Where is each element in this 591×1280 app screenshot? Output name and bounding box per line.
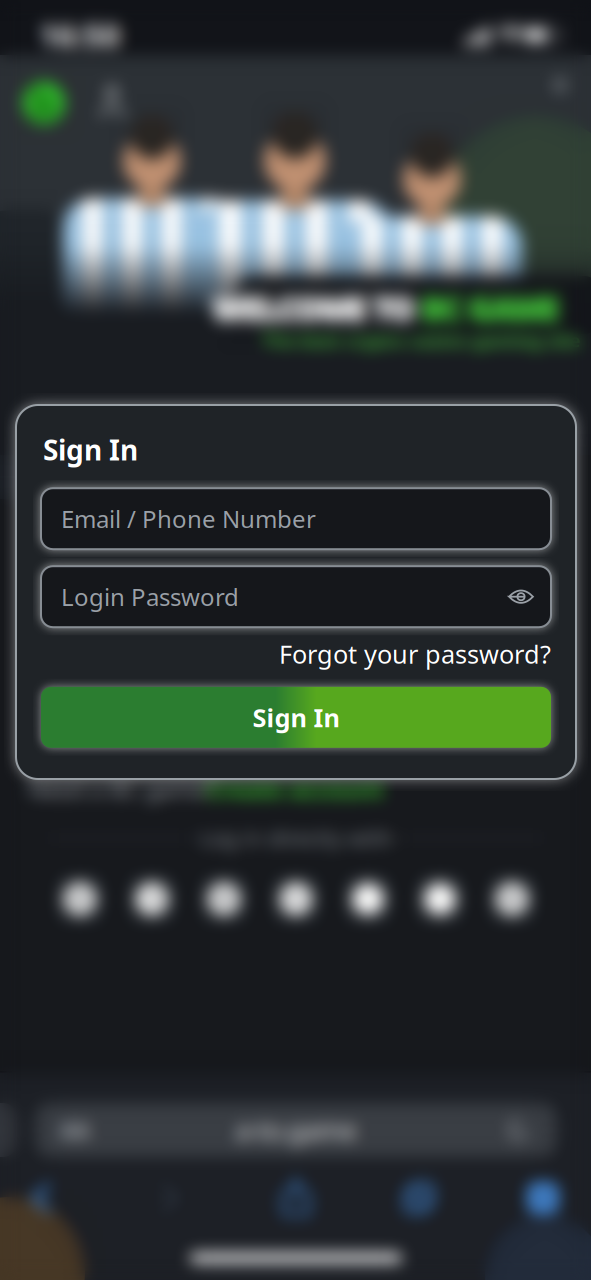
staticText: Log in directly with bbox=[200, 824, 392, 852]
button[interactable]: Show password bbox=[499, 580, 543, 613]
button[interactable]: Address bar: a-to.game bbox=[35, 1103, 557, 1157]
button[interactable]: Log in with provider 7 bbox=[486, 873, 538, 925]
staticText: Sign In bbox=[252, 700, 339, 734]
staticText: b bbox=[31, 76, 57, 129]
button[interactable]: Account bbox=[93, 81, 131, 123]
staticText: Forgot your password? bbox=[279, 637, 551, 671]
staticText: AA bbox=[60, 1115, 90, 1145]
button[interactable]: Create account bbox=[204, 771, 386, 807]
staticText: Create account bbox=[206, 773, 384, 805]
button[interactable]: Share bbox=[273, 1172, 319, 1224]
staticText: BC GAME bbox=[421, 287, 560, 329]
button[interactable]: BC Game home bbox=[23, 76, 65, 129]
button[interactable]: Tabs bbox=[395, 1172, 445, 1224]
staticText: Email / Phone Number bbox=[61, 503, 316, 535]
button[interactable]: Forgot your password? bbox=[279, 627, 551, 671]
button[interactable]: Log in with provider 4 bbox=[270, 873, 322, 925]
button[interactable]: Downloads bbox=[520, 1175, 566, 1221]
button[interactable]: Log in with provider 6 bbox=[414, 873, 466, 925]
staticText: 16:50 bbox=[39, 15, 120, 55]
button[interactable]: Sign In bbox=[41, 687, 551, 748]
button[interactable]: Log in with provider 1 bbox=[54, 873, 106, 925]
staticText: a-to.game bbox=[235, 1113, 356, 1147]
staticText: Sign In bbox=[43, 431, 138, 468]
staticText: WELCOME TO bbox=[212, 287, 415, 329]
staticText: Need a BC game? bbox=[28, 774, 216, 804]
button[interactable]: Log in with provider 5 bbox=[342, 873, 394, 925]
staticText: The best crypto casino gaming site bbox=[261, 328, 580, 352]
button[interactable]: Close bbox=[544, 69, 575, 100]
button[interactable]: Log in with provider 3 bbox=[198, 873, 250, 925]
button[interactable]: Log in with provider 2 bbox=[126, 873, 178, 925]
staticText: Login Password bbox=[61, 581, 239, 613]
button[interactable]: Back bbox=[22, 1172, 62, 1224]
